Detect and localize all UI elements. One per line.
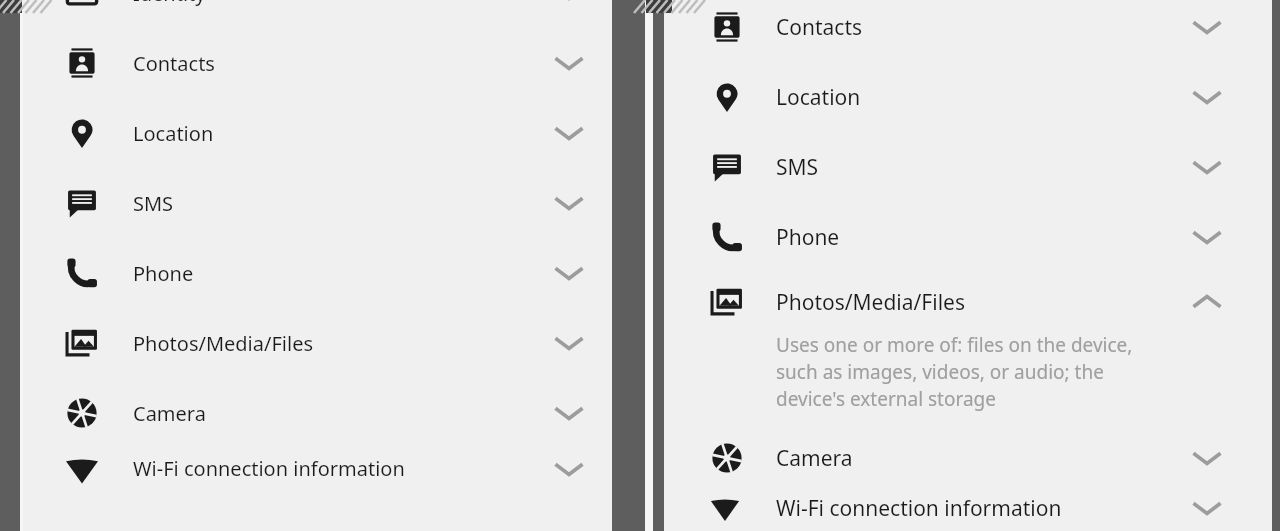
button[interactable]: Wi-Fi connection information: [23, 448, 612, 489]
staticText: Camera: [133, 400, 206, 427]
other: Expand Phone: [554, 258, 584, 288]
staticText: Identity: [133, 0, 206, 7]
button[interactable]: SMS: [23, 168, 612, 238]
other: Expand Camera: [1192, 443, 1222, 473]
staticText: Location: [776, 83, 861, 112]
button[interactable]: Identity: [23, 0, 612, 28]
button[interactable]: Photos/Media/Files: [664, 272, 1272, 332]
staticText: Contacts: [133, 50, 215, 77]
staticText: Wi-Fi connection information: [133, 455, 405, 482]
button[interactable]: Wi-Fi connection information: [664, 493, 1272, 523]
other: Expand Wi-Fi connection information: [1192, 493, 1222, 523]
button[interactable]: Location: [23, 98, 612, 168]
button[interactable]: Contacts: [664, 0, 1272, 62]
staticText: Camera: [776, 444, 853, 473]
other: Expand Camera: [554, 398, 584, 428]
staticText: Phone: [776, 223, 840, 252]
other: Expand Contacts: [1192, 12, 1222, 42]
other: Expand Location: [1192, 82, 1222, 112]
other: Expand Phone: [1192, 222, 1222, 252]
button[interactable]: Location: [664, 62, 1272, 132]
staticText: Uses one or more of: files on the device…: [776, 332, 1176, 412]
staticText: Phone: [133, 260, 194, 287]
staticText: SMS: [133, 190, 174, 217]
staticText: Location: [133, 120, 214, 147]
other: Expand Photos/Media/Files: [554, 328, 584, 358]
other: Expand SMS: [554, 188, 584, 218]
staticText: SMS: [776, 153, 819, 182]
staticText: Contacts: [776, 13, 863, 42]
staticText: Photos/Media/Files: [776, 288, 965, 317]
button[interactable]: Photos/Media/Files: [23, 308, 612, 378]
button[interactable]: Camera: [23, 378, 612, 448]
staticText: Photos/Media/Files: [133, 330, 313, 357]
button[interactable]: Contacts: [23, 28, 612, 98]
other: Expand SMS: [1192, 152, 1222, 182]
button[interactable]: Phone: [664, 202, 1272, 272]
other: Expand Location: [554, 118, 584, 148]
button[interactable]: SMS: [664, 132, 1272, 202]
other: Expand Contacts: [554, 48, 584, 78]
button[interactable]: Phone: [23, 238, 612, 308]
other: Collapse Photos/Media/Files: [1192, 287, 1222, 317]
staticText: Wi-Fi connection information: [776, 494, 1062, 523]
other: Expand Wi-Fi connection information: [554, 454, 584, 484]
button[interactable]: Camera: [664, 423, 1272, 493]
